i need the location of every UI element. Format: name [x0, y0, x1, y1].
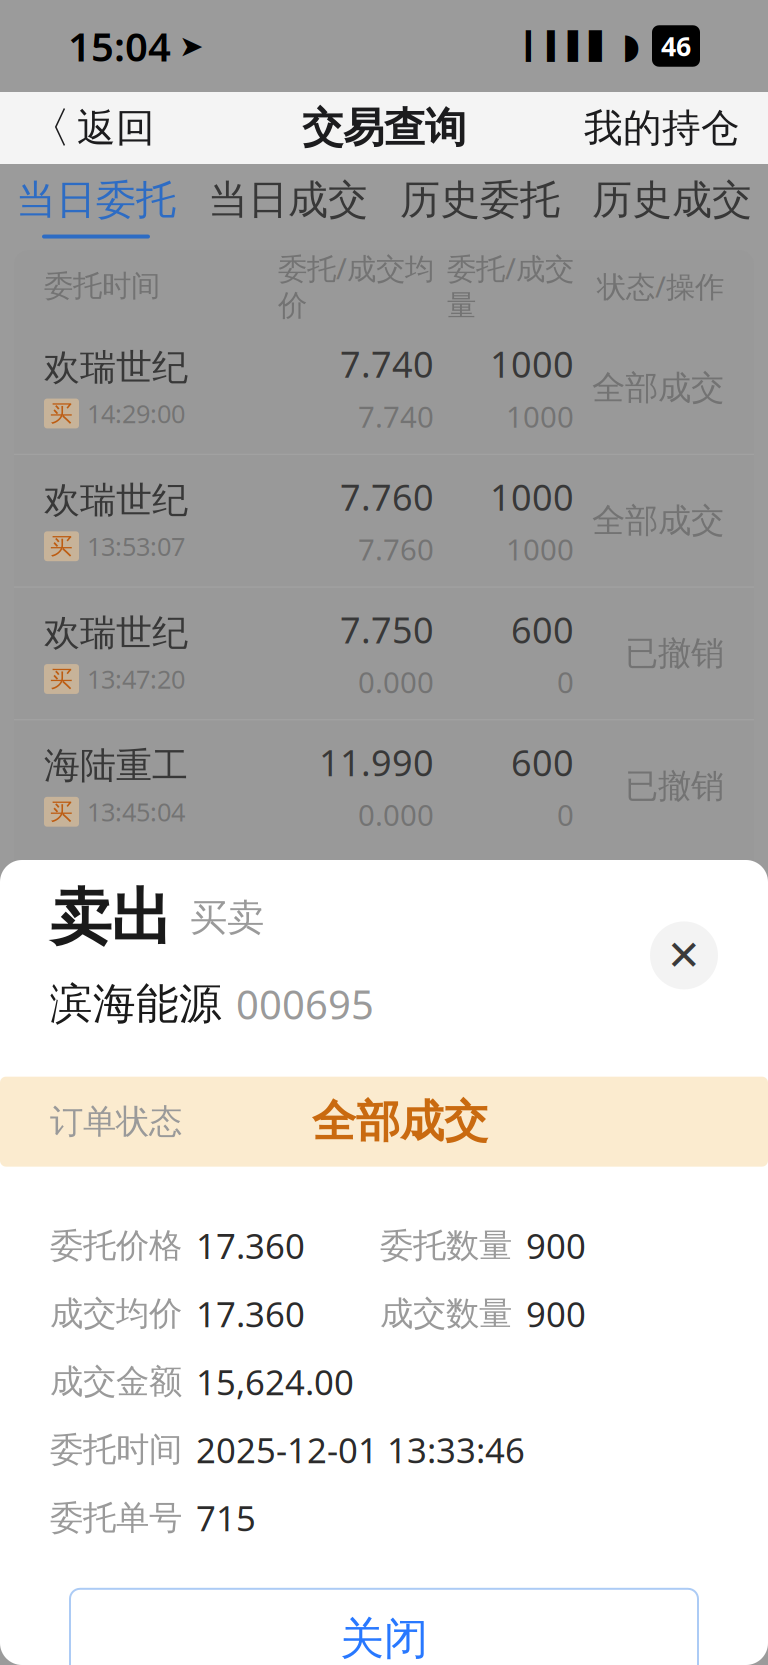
staticText: 7.740	[358, 397, 434, 436]
staticText: 买	[50, 532, 73, 560]
staticText: 11.990	[319, 738, 434, 786]
staticText: 0.000	[358, 662, 434, 701]
staticText: 订单状态	[50, 1101, 182, 1142]
staticText: 7.750	[340, 605, 434, 653]
staticText: 委托时间	[50, 1429, 182, 1470]
staticText: 委托价格	[50, 1225, 182, 1266]
staticText: ◗	[622, 26, 640, 66]
staticText: 委托时间	[44, 268, 160, 304]
staticText: 买卖	[190, 895, 264, 941]
staticText: 1000	[490, 473, 574, 521]
staticText: 2025-12-01 13:33:46	[196, 1427, 525, 1473]
staticText: 买	[50, 400, 73, 427]
staticText: 7.740	[340, 340, 434, 388]
staticText: 900	[526, 1291, 586, 1337]
staticText: 0	[557, 795, 574, 834]
staticText: 〈	[28, 102, 71, 154]
staticText: 滨海能源	[50, 978, 222, 1030]
staticText: 715	[196, 1495, 256, 1541]
staticText: 15,624.00	[196, 1359, 354, 1405]
staticText: 成交金额	[50, 1361, 182, 1402]
staticText: 委托单号	[50, 1497, 182, 1538]
staticText: 委托/成交量	[447, 248, 574, 323]
staticText: 600	[511, 738, 574, 786]
staticText: 历史成交	[592, 175, 752, 224]
button[interactable]: 当日成交	[192, 164, 384, 250]
button[interactable]: 关闭	[70, 1589, 698, 1665]
staticText: 7.760	[340, 473, 434, 521]
staticText: ▎▍▌▋	[526, 31, 610, 61]
staticText: 13:45:04	[87, 795, 185, 829]
staticText: 当日成交	[208, 175, 368, 224]
staticText: 13:47:20	[87, 662, 185, 696]
staticText: 全部成交	[312, 1095, 488, 1149]
staticText: 全部成交	[592, 367, 724, 408]
staticText: 委托/成交均价	[278, 248, 434, 323]
staticText: 关闭	[340, 1612, 428, 1665]
staticText: 海陆重工	[44, 744, 188, 788]
staticText: 13:53:07	[87, 529, 185, 563]
staticText: 1000	[506, 530, 574, 569]
staticText: 欢瑞世纪	[44, 611, 188, 655]
button[interactable]: 历史委托	[384, 164, 576, 250]
staticText: 已撤销	[625, 633, 724, 674]
staticText: 状态/操作	[597, 266, 724, 305]
staticText: 买	[50, 798, 73, 826]
staticText: 当日委托	[16, 175, 176, 224]
staticText: 成交均价	[50, 1293, 182, 1334]
button[interactable]: 历史成交	[576, 164, 768, 250]
staticText: 46	[661, 28, 691, 64]
staticText: 历史委托	[400, 175, 560, 224]
staticText: 交易查询	[302, 103, 466, 153]
button[interactable]: 当日委托	[0, 164, 192, 250]
staticText: 卖出	[50, 880, 172, 955]
staticText: 000695	[236, 977, 374, 1031]
staticText: 17.360	[196, 1223, 305, 1269]
staticText: 欢瑞世纪	[44, 345, 188, 390]
staticText: 返回	[77, 104, 155, 152]
staticText: 7.760	[358, 530, 434, 569]
staticText: 全部成交	[592, 500, 724, 541]
staticText: 1000	[506, 397, 574, 436]
staticText: 600	[511, 605, 574, 653]
staticText: 已撤销	[625, 766, 724, 807]
staticText: 欢瑞世纪	[44, 478, 188, 522]
staticText: 委托数量	[380, 1225, 512, 1266]
staticText: 900	[526, 1223, 586, 1269]
button[interactable]: 关闭	[650, 921, 718, 989]
staticText: 我的持仓	[584, 104, 740, 152]
staticText: ✕	[666, 932, 701, 979]
staticText: 15:04	[68, 19, 171, 72]
button[interactable]: 我的持仓	[556, 92, 768, 164]
staticText: ➤	[179, 29, 204, 63]
staticText: 14:29:00	[87, 397, 185, 430]
staticText: 成交数量	[380, 1293, 512, 1334]
staticText: 0.000	[358, 795, 434, 834]
button[interactable]: 〈	[0, 90, 183, 166]
staticText: 17.360	[196, 1291, 305, 1337]
staticText: 0	[557, 662, 574, 701]
staticText: 买	[50, 665, 73, 693]
staticText: 1000	[490, 340, 574, 388]
